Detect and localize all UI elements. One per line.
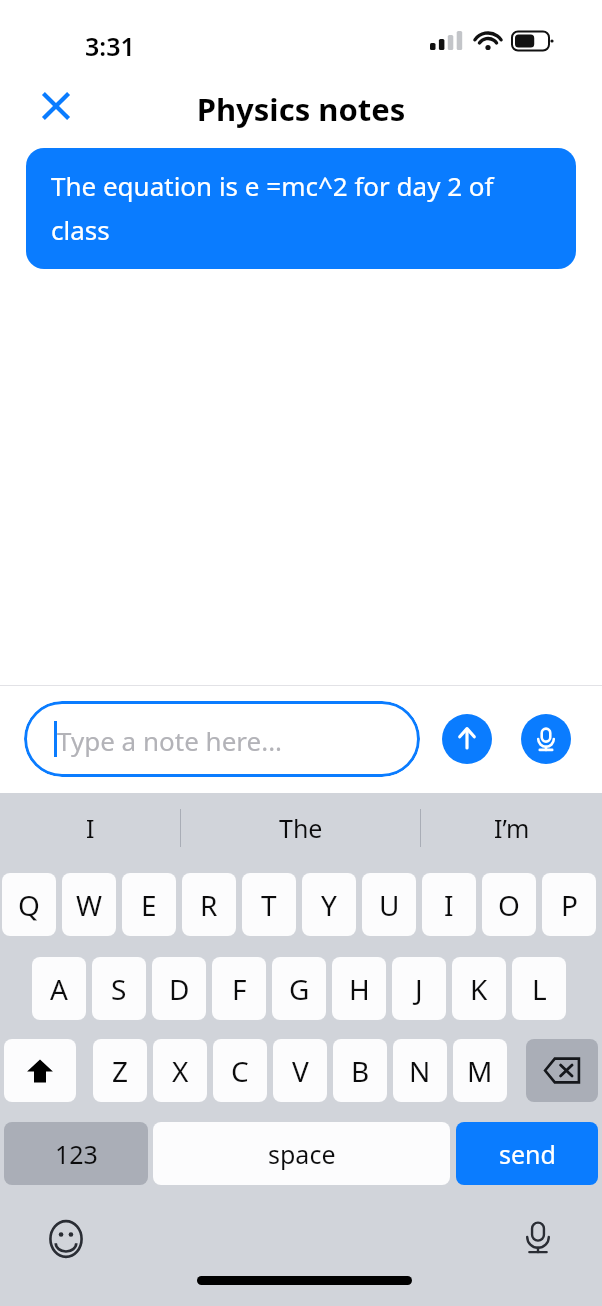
staticText: D bbox=[169, 970, 190, 1008]
staticText: A bbox=[50, 970, 68, 1008]
staticText: The bbox=[279, 811, 323, 845]
button[interactable]: B bbox=[333, 1039, 387, 1102]
button[interactable]: Emoji bbox=[40, 1213, 92, 1265]
staticText: M bbox=[467, 1052, 493, 1090]
staticText: Q bbox=[18, 886, 40, 924]
staticText: E bbox=[141, 886, 157, 924]
staticText: R bbox=[200, 886, 218, 924]
button[interactable]: C bbox=[213, 1039, 267, 1102]
button[interactable]: D bbox=[152, 957, 206, 1020]
button[interactable]: I bbox=[0, 793, 180, 863]
staticText: space bbox=[268, 1137, 336, 1171]
button[interactable]: L bbox=[512, 957, 566, 1020]
staticText: I bbox=[86, 811, 95, 845]
staticText: 123 bbox=[55, 1137, 98, 1171]
button[interactable]: The equation is e =mc^2 for day 2 of cla… bbox=[26, 148, 576, 269]
staticText: send bbox=[499, 1137, 556, 1171]
button[interactable]: J bbox=[392, 957, 446, 1020]
staticText: K bbox=[470, 970, 488, 1008]
button[interactable]: W bbox=[62, 873, 116, 936]
staticText: C bbox=[231, 1052, 249, 1090]
button[interactable]: Backspace bbox=[526, 1039, 598, 1102]
staticText: Z bbox=[112, 1052, 129, 1090]
staticText: B bbox=[351, 1052, 370, 1090]
button[interactable]: V bbox=[273, 1039, 327, 1102]
button[interactable]: A bbox=[32, 957, 86, 1020]
button[interactable]: Y bbox=[302, 873, 356, 936]
staticText: H bbox=[349, 970, 370, 1008]
button[interactable]: Q bbox=[2, 873, 56, 936]
staticText: Physics notes bbox=[0, 88, 602, 130]
staticText: G bbox=[289, 970, 310, 1008]
button[interactable]: I’m bbox=[421, 793, 602, 863]
button[interactable]: F bbox=[212, 957, 266, 1020]
button[interactable]: Type a note here... bbox=[24, 701, 420, 777]
staticText: J bbox=[415, 970, 423, 1008]
staticText: F bbox=[232, 970, 247, 1008]
staticText: The equation is e =mc^2 for day 2 of cla… bbox=[51, 168, 556, 247]
staticText: I bbox=[444, 886, 454, 924]
button[interactable]: G bbox=[272, 957, 326, 1020]
button[interactable]: The bbox=[181, 793, 420, 863]
staticText: U bbox=[379, 886, 400, 924]
staticText: P bbox=[561, 886, 578, 924]
button[interactable]: X bbox=[153, 1039, 207, 1102]
staticText: W bbox=[76, 886, 103, 924]
button[interactable]: 123 bbox=[4, 1122, 148, 1185]
button[interactable]: P bbox=[542, 873, 596, 936]
button[interactable]: M bbox=[453, 1039, 507, 1102]
staticText: V bbox=[292, 1052, 309, 1090]
staticText: T bbox=[261, 886, 277, 924]
button[interactable]: O bbox=[482, 873, 536, 936]
button[interactable]: T bbox=[242, 873, 296, 936]
button[interactable]: I bbox=[422, 873, 476, 936]
staticText: I’m bbox=[494, 811, 530, 845]
button[interactable]: K bbox=[452, 957, 506, 1020]
button[interactable]: Shift bbox=[4, 1039, 76, 1102]
button[interactable]: E bbox=[122, 873, 176, 936]
staticText: 3:31 bbox=[85, 29, 135, 63]
button[interactable]: Z bbox=[93, 1039, 147, 1102]
button[interactable]: U bbox=[362, 873, 416, 936]
button[interactable]: R bbox=[182, 873, 236, 936]
button[interactable]: S bbox=[92, 957, 146, 1020]
staticText: N bbox=[409, 1052, 431, 1090]
button[interactable]: Dictation bbox=[512, 1211, 564, 1263]
button[interactable]: N bbox=[393, 1039, 447, 1102]
button[interactable]: Send bbox=[442, 714, 492, 764]
staticText: Y bbox=[321, 886, 337, 924]
staticText: X bbox=[172, 1052, 189, 1090]
staticText: Type a note here... bbox=[57, 723, 283, 758]
staticText: L bbox=[532, 970, 547, 1008]
button[interactable]: Voice input bbox=[521, 714, 571, 764]
button[interactable]: space bbox=[153, 1122, 450, 1185]
button[interactable]: Close bbox=[32, 82, 80, 130]
staticText: S bbox=[111, 970, 127, 1008]
staticText: O bbox=[498, 886, 520, 924]
button[interactable]: send bbox=[456, 1122, 598, 1185]
button[interactable]: H bbox=[332, 957, 386, 1020]
